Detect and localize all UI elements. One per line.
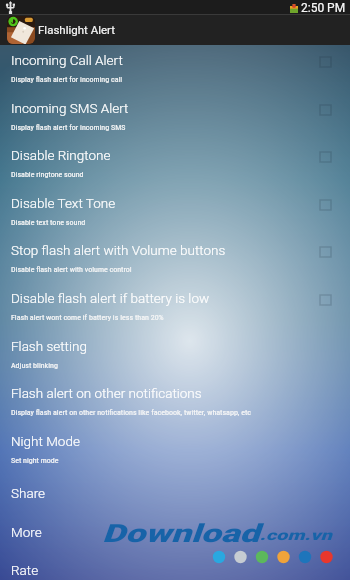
button[interactable]: Night Mode (0, 428, 350, 476)
staticText: Display flash alert for incoming call (11, 75, 123, 84)
button[interactable]: Disable flash alert if battery is low (0, 285, 350, 333)
button[interactable]: Share (0, 475, 350, 514)
staticText: Incoming SMS Alert (11, 100, 129, 116)
staticText: Download (102, 519, 260, 548)
button[interactable]: Stop flash alert with Volume buttons (0, 237, 350, 285)
button[interactable]: Disable Text Tone (0, 190, 350, 238)
staticText: Incoming Call Alert (11, 52, 123, 68)
button[interactable]: Flash setting (0, 333, 350, 381)
button[interactable]: More (0, 514, 350, 553)
staticText: Night Mode (11, 433, 80, 449)
button[interactable]: Toggle Incoming Call Alert (320, 57, 331, 67)
button[interactable]: Flash alert on other notifications (0, 380, 350, 428)
staticText: Set night mode (11, 456, 59, 465)
staticText: Rate (11, 562, 39, 578)
staticText: Flash alert on other notifications (11, 385, 202, 401)
button[interactable]: Toggle Disable flash alert if battery is… (320, 295, 331, 305)
staticText: 2:50 PM (301, 1, 346, 15)
staticText: Flash setting (11, 338, 87, 354)
staticText: Disable Ringtone (11, 147, 111, 163)
button[interactable]: Incoming SMS Alert (0, 95, 350, 143)
other: USB connected (6, 1, 15, 14)
staticText: Disable Text Tone (11, 195, 116, 211)
button[interactable]: Rate (0, 552, 350, 580)
staticText: Display flash alert for incoming SMS (11, 123, 126, 132)
staticText: Display flash alert on other notificatio… (11, 408, 252, 417)
staticText: Flashlight Alert (38, 23, 116, 36)
staticText: Disable ringtone sound (11, 170, 84, 179)
button[interactable]: Disable Ringtone (0, 142, 350, 190)
staticText: Disable flash alert if battery is low (11, 290, 210, 306)
staticText: Share (11, 485, 46, 501)
staticText: Disable flash alert with volume control (11, 265, 132, 274)
staticText: Adjust blinking (11, 361, 58, 370)
button[interactable]: Incoming Call Alert (0, 47, 350, 95)
staticText: Flash alert wont come if battery is less… (11, 313, 164, 322)
button[interactable]: Flashlight Alert app icon (7, 16, 35, 44)
button[interactable]: Toggle Disable Text Tone (320, 200, 331, 210)
button[interactable]: Toggle Stop flash alert with Volume butt… (320, 247, 331, 257)
button[interactable]: Toggle Incoming SMS Alert (320, 105, 331, 115)
staticText: More (11, 524, 42, 540)
staticText: Disable text tone sound (11, 218, 86, 227)
staticText: Stop flash alert with Volume buttons (11, 242, 226, 258)
button[interactable]: Toggle Disable Ringtone (320, 152, 331, 162)
staticText: .com.vn (260, 527, 332, 543)
